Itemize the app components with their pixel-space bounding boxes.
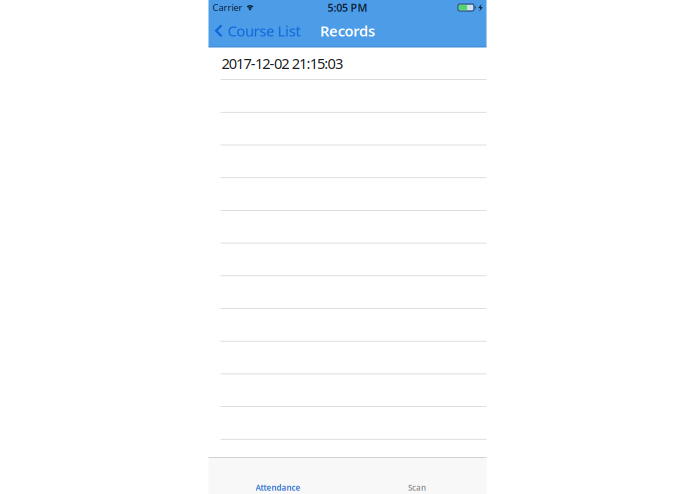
staticText: Records [320, 21, 375, 40]
staticText: Carrier [212, 1, 242, 14]
button[interactable]: Course List [208, 21, 300, 40]
button[interactable]: Attendance [208, 458, 347, 494]
button[interactable]: Scan [347, 458, 486, 494]
staticText: Course List [227, 21, 300, 40]
staticText: 5:05 PM [328, 0, 367, 15]
staticText: Scan [408, 482, 426, 493]
button[interactable]: 2017-12-02 21:15:03 [208, 47, 486, 80]
staticText: 2017-12-02 21:15:03 [221, 53, 343, 73]
staticText: Attendance [255, 482, 300, 493]
